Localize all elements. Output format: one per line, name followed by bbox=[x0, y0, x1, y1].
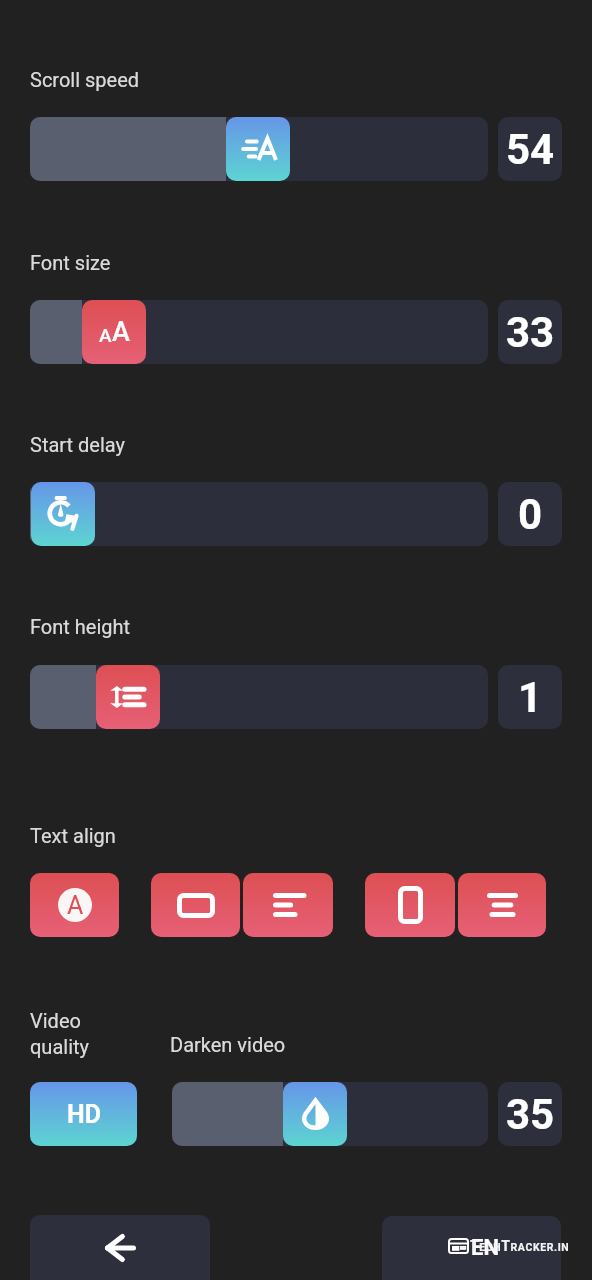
staticText: Video quality bbox=[30, 1009, 90, 1058]
button[interactable]: Align left bbox=[243, 873, 333, 937]
staticText: Font size bbox=[30, 251, 111, 274]
button[interactable]: slider bbox=[30, 665, 488, 729]
staticText: 33 bbox=[506, 308, 555, 357]
button[interactable]: 1 bbox=[498, 665, 562, 729]
staticText: Start delay bbox=[30, 433, 126, 456]
staticText: A bbox=[99, 324, 112, 346]
button[interactable]: slider bbox=[30, 300, 488, 364]
button[interactable]: Landscape bbox=[151, 873, 240, 937]
staticText: 35 bbox=[506, 1090, 555, 1139]
staticText: TECHTRACKER.IN bbox=[470, 1238, 570, 1254]
staticText: A bbox=[67, 891, 84, 920]
button[interactable]: Darken video slider bbox=[172, 1082, 488, 1146]
staticText: EN bbox=[471, 1235, 499, 1261]
button[interactable]: slider bbox=[30, 117, 488, 181]
staticText: Darken video bbox=[170, 1033, 286, 1056]
button[interactable]: Subtitle language EN bbox=[382, 1216, 561, 1280]
button[interactable]: 54 bbox=[498, 117, 562, 181]
button[interactable]: Capitalize bbox=[30, 873, 119, 937]
staticText: Scroll speed bbox=[30, 68, 140, 91]
button[interactable]: 0 bbox=[498, 482, 562, 546]
button[interactable]: HD bbox=[30, 1082, 137, 1146]
button[interactable]: handle bbox=[31, 482, 95, 546]
button[interactable]: slider bbox=[30, 482, 488, 546]
button[interactable]: Darken handle bbox=[283, 1082, 347, 1146]
staticText: Font height bbox=[30, 615, 131, 638]
button[interactable]: handle bbox=[226, 117, 290, 181]
staticText: 0 bbox=[518, 490, 543, 539]
button[interactable]: Portrait bbox=[365, 873, 455, 937]
button[interactable]: handle bbox=[96, 665, 160, 729]
staticText: 54 bbox=[506, 125, 555, 174]
button[interactable]: 33 bbox=[498, 300, 562, 364]
staticText: Text align bbox=[30, 824, 116, 847]
staticText: HD bbox=[67, 1100, 101, 1129]
staticText: 1 bbox=[518, 673, 543, 722]
button[interactable]: 35 bbox=[498, 1082, 562, 1146]
button[interactable]: Back bbox=[30, 1215, 210, 1280]
button[interactable]: Align center bbox=[458, 873, 546, 937]
staticText: A bbox=[112, 316, 130, 348]
button[interactable]: handle bbox=[82, 300, 146, 364]
